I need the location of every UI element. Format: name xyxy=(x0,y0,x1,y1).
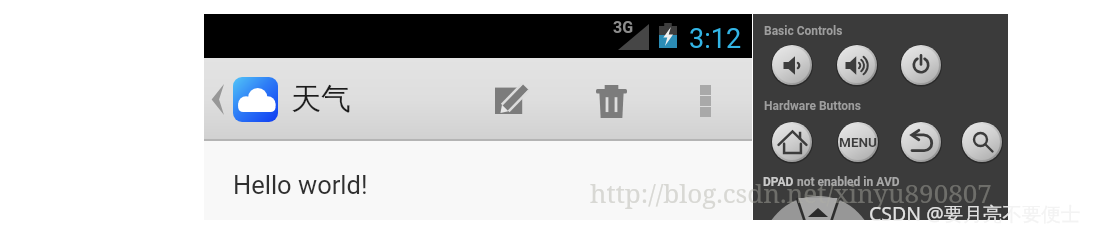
staticText: 3G xyxy=(613,18,634,37)
staticText: DPAD xyxy=(763,175,794,189)
staticText: 3:12 xyxy=(689,23,742,55)
staticText: 天气 xyxy=(291,80,351,118)
other: Navigate up xyxy=(211,84,224,115)
staticText: http://blog.csdn.net/xinyu890807 xyxy=(590,175,992,210)
staticText: not enabled in AVD xyxy=(794,175,900,189)
staticText: CSDN @要月亮不要便士 xyxy=(869,200,1081,227)
button[interactable]: Power xyxy=(900,44,942,86)
button[interactable]: Search xyxy=(961,121,1003,163)
staticText: Basic Controls xyxy=(764,24,843,38)
staticText: Hardware Buttons xyxy=(764,99,861,113)
button[interactable]: Edit xyxy=(484,58,540,140)
button[interactable]: Volume down xyxy=(771,44,813,86)
button[interactable]: Back xyxy=(900,121,942,163)
button[interactable]: Delete xyxy=(583,58,639,140)
button[interactable]: More options xyxy=(677,58,733,140)
button[interactable]: Menu xyxy=(837,121,879,163)
button[interactable]: Volume up xyxy=(836,44,878,86)
button[interactable]: Home xyxy=(771,121,813,163)
staticText: MENU xyxy=(837,134,879,150)
staticText: Hello world! xyxy=(233,170,368,200)
button[interactable]: Navigate up xyxy=(204,58,351,140)
